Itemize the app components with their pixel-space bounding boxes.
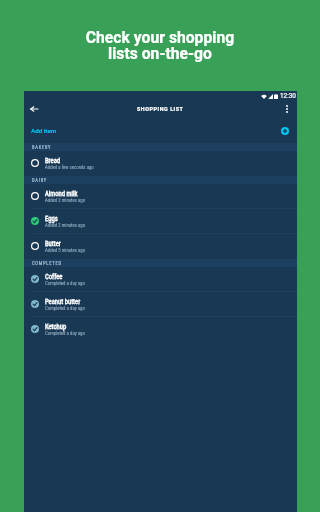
staticText: Check your shopping lists on-the-go xyxy=(0,28,320,63)
button[interactable]: Eggs xyxy=(24,209,297,234)
button[interactable]: Almond milk xyxy=(24,184,297,209)
staticText: Added 2 minutes ago xyxy=(45,198,86,204)
staticText: Ketchup xyxy=(45,323,67,331)
staticText: Butter xyxy=(45,240,61,248)
staticText: SHOPPING LIST xyxy=(137,106,184,112)
staticText: Almond milk xyxy=(45,190,78,198)
staticText: Added 5 minutes ago xyxy=(45,248,86,254)
button[interactable]: Add item xyxy=(24,119,297,143)
staticText: BAKERY xyxy=(32,145,52,150)
staticText: Bread xyxy=(45,157,61,165)
staticText: COMPLETED xyxy=(32,261,62,266)
button[interactable]: Ketchup xyxy=(24,317,297,342)
staticText: Coffee xyxy=(45,273,63,281)
staticText: Added 2 minutes ago xyxy=(45,223,86,229)
button[interactable]: Back xyxy=(26,101,42,117)
button[interactable]: Coffee xyxy=(24,267,297,292)
staticText: Eggs xyxy=(45,215,58,223)
staticText: Completed a day ago xyxy=(45,331,85,337)
staticText: Completed a day ago xyxy=(45,281,85,287)
staticText: 12:30 xyxy=(280,92,296,100)
staticText: Peanut butter xyxy=(45,298,81,306)
button[interactable]: Butter xyxy=(24,234,297,259)
button[interactable]: Bread xyxy=(24,151,297,176)
staticText: Added a few seconds ago xyxy=(45,165,94,171)
button[interactable]: Peanut butter xyxy=(24,292,297,317)
staticText: Add item xyxy=(31,127,57,134)
staticText: DAIRY xyxy=(32,178,47,183)
staticText: Completed a day ago xyxy=(45,306,85,312)
button[interactable]: More options xyxy=(279,101,295,117)
